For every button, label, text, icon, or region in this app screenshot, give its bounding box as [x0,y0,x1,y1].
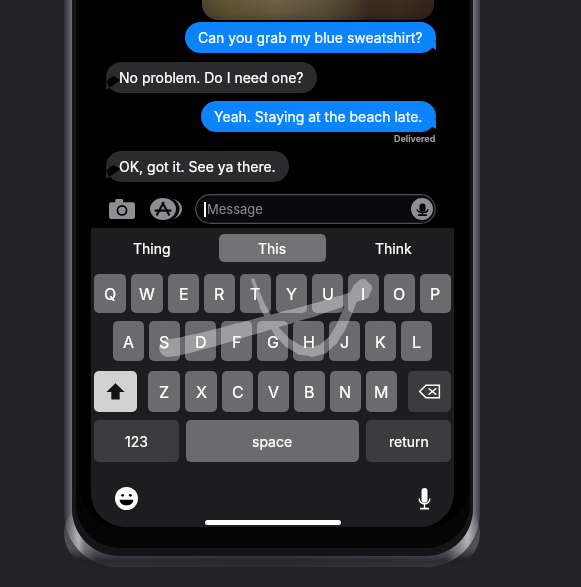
button[interactable]: H [293,321,324,361]
staticText: Think [375,240,412,257]
button[interactable]: A [113,321,144,361]
button[interactable]: X [185,371,217,412]
staticText: Y [286,284,297,303]
staticText: W [139,284,155,303]
button[interactable]: Camera [106,194,138,224]
button[interactable]: D [185,321,216,361]
button[interactable]: K [365,321,396,361]
staticText: F [232,332,242,351]
button[interactable]: Voice message [411,198,433,220]
button[interactable]: Think [340,234,447,262]
staticText: C [232,382,244,401]
button[interactable]: J [329,321,360,361]
button[interactable]: App Store [150,194,182,224]
button[interactable]: This [219,234,326,262]
staticText: Q [104,284,117,303]
staticText: space [252,433,293,450]
staticText: T [250,284,261,303]
staticText: Can you grab my blue sweatshirt? [198,29,423,46]
button[interactable]: O [384,274,415,313]
button[interactable]: T [240,274,271,313]
staticText: D [195,332,207,351]
staticText: Z [159,382,170,401]
staticText: return [389,433,429,450]
staticText: OK, got it. See ya there. [119,158,276,175]
staticText: N [339,382,352,401]
staticText: Delivered [394,133,436,144]
button[interactable]: W [131,274,163,313]
button[interactable]: Message [195,194,436,224]
staticText: V [268,382,280,401]
button[interactable]: Q [94,274,126,313]
staticText: X [196,382,207,401]
staticText: H [303,332,315,351]
staticText: R [214,284,225,303]
staticText: P [430,284,441,303]
staticText: M [374,382,389,401]
button[interactable]: 123 [94,420,179,462]
button[interactable]: space [186,420,359,462]
staticText: L [412,332,422,351]
button[interactable]: U [312,274,343,313]
staticText: J [340,332,350,351]
staticText: U [322,284,334,303]
staticText: K [375,332,386,351]
button[interactable]: Yeah. Staying at the beach late. [201,101,436,132]
staticText: G [267,332,279,351]
staticText: This [258,240,287,257]
button[interactable]: No problem. Do I need one? [106,62,317,93]
staticText: No problem. Do I need one? [119,69,304,86]
button[interactable]: Emoji keyboard [112,484,140,512]
button[interactable]: B [294,371,325,412]
staticText: Yeah. Staying at the beach late. [214,108,423,125]
staticText: A [123,332,135,351]
staticText: E [179,284,189,303]
button[interactable]: V [258,371,289,412]
button[interactable]: Z [148,371,180,412]
button[interactable]: P [420,274,451,313]
staticText: 123 [125,433,148,450]
button[interactable]: S [149,321,180,361]
button[interactable]: Shift [94,371,137,412]
button[interactable]: C [222,371,253,412]
button[interactable]: R [204,274,235,313]
button[interactable]: M [366,371,397,412]
button[interactable]: OK, got it. See ya there. [106,151,289,182]
staticText: I [361,284,366,303]
button[interactable]: I [348,274,379,313]
staticText: Thing [133,240,171,257]
button[interactable]: Backspace [408,371,451,412]
button[interactable]: Dictation [410,484,438,512]
button[interactable]: L [401,321,432,361]
button[interactable] [202,0,434,20]
button[interactable]: N [330,371,361,412]
button[interactable]: Can you grab my blue sweatshirt? [185,22,436,53]
button[interactable]: G [257,321,288,361]
staticText: O [393,284,406,303]
button[interactable]: return [366,420,451,462]
button[interactable]: Y [276,274,307,313]
staticText: Message [207,201,263,217]
button[interactable]: F [221,321,252,361]
staticText: B [304,382,315,401]
button[interactable]: Thing [98,234,205,262]
button[interactable]: E [168,274,199,313]
staticText: S [159,332,170,351]
